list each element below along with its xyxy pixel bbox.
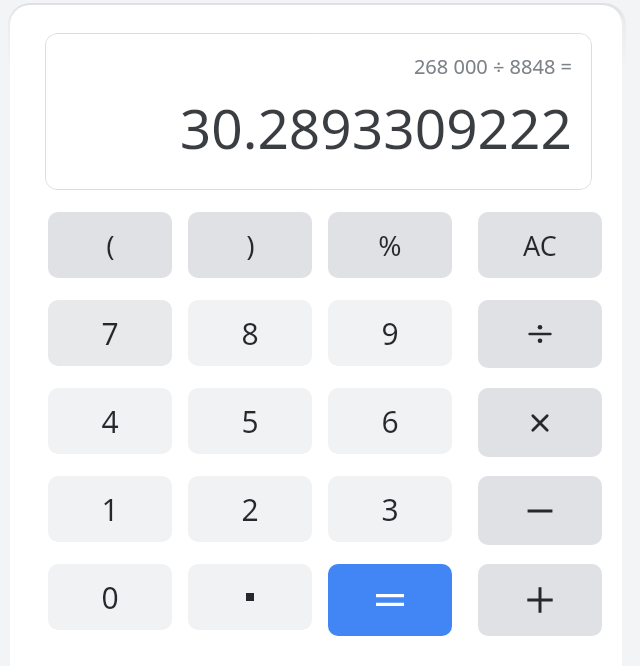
staticText: 6 — [381, 401, 399, 442]
button[interactable]: 8 — [188, 300, 312, 366]
staticText: ) — [246, 226, 255, 264]
button[interactable]: Equals — [328, 564, 452, 636]
button[interactable]: AC — [478, 212, 602, 278]
staticText: 268 000 ÷ 8848 = — [413, 53, 572, 80]
button[interactable]: % — [328, 212, 452, 278]
button[interactable]: 2 — [188, 476, 312, 542]
button[interactable]: ( — [48, 212, 172, 278]
button[interactable]: 9 — [328, 300, 452, 366]
staticText: 2 — [241, 489, 259, 530]
staticText: AC — [523, 227, 557, 264]
button[interactable]: 1 — [48, 476, 172, 542]
button[interactable]: Divide — [478, 300, 602, 368]
staticText: 0 — [101, 577, 119, 618]
button[interactable]: Add — [478, 564, 602, 636]
button[interactable]: ) — [188, 212, 312, 278]
staticText: 5 — [241, 401, 259, 442]
staticText: 3 — [381, 489, 399, 530]
button[interactable]: 6 — [328, 388, 452, 454]
staticText: ( — [106, 226, 115, 264]
button[interactable]: Decimal point — [188, 564, 312, 630]
staticText: 9 — [381, 313, 399, 354]
button[interactable]: 3 — [328, 476, 452, 542]
staticText: 7 — [101, 313, 119, 354]
button[interactable]: Subtract — [478, 476, 602, 545]
staticText: % — [378, 226, 402, 264]
staticText: 1 — [101, 489, 119, 530]
button[interactable]: 4 — [48, 388, 172, 454]
button[interactable]: 7 — [48, 300, 172, 366]
button[interactable]: 0 — [48, 564, 172, 630]
staticText: 30.2893309222 — [179, 90, 572, 165]
staticText: 8 — [241, 313, 259, 354]
button[interactable]: Multiply — [478, 388, 602, 457]
button[interactable]: 5 — [188, 388, 312, 454]
staticText: 4 — [101, 401, 119, 442]
